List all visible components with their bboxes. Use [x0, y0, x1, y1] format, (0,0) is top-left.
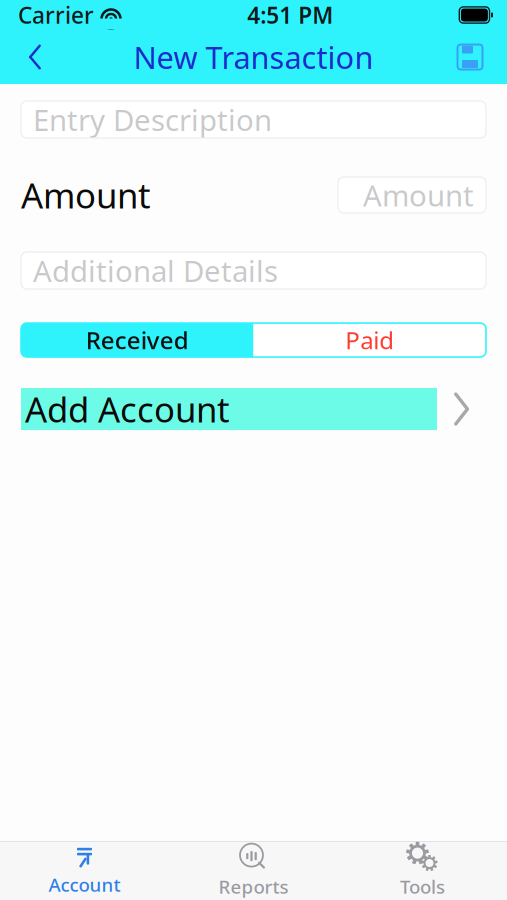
- button[interactable]: Back: [0, 31, 48, 83]
- staticText: Amount: [363, 175, 474, 214]
- staticText: Carrier: [18, 0, 94, 30]
- button[interactable]: Tools: [338, 842, 507, 900]
- button[interactable]: Account: [0, 842, 169, 900]
- staticText: 4:51 PM: [247, 0, 333, 30]
- button[interactable]: Received: [21, 323, 253, 357]
- staticText: Entry Description: [33, 100, 272, 139]
- staticText: Reports: [218, 874, 288, 899]
- staticText: Received: [86, 324, 189, 356]
- staticText: Additional Details: [33, 251, 278, 290]
- staticText: Add Account: [25, 386, 230, 432]
- button[interactable]: Save: [455, 34, 507, 80]
- button[interactable]: Paid: [253, 323, 486, 357]
- staticText: Account: [48, 872, 120, 897]
- staticText: Tools: [400, 874, 445, 899]
- staticText: Paid: [345, 324, 394, 356]
- button[interactable]: Reports: [169, 842, 338, 900]
- button[interactable]: Add Account: [21, 388, 486, 430]
- staticText: Amount: [21, 172, 151, 218]
- staticText: New Transaction: [133, 37, 373, 77]
